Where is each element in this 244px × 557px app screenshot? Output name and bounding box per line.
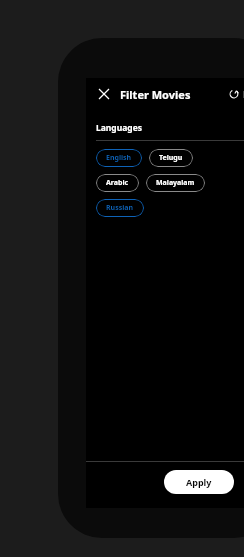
button[interactable]: English	[96, 149, 142, 167]
staticText: Apply	[186, 476, 212, 488]
staticText: English	[106, 153, 132, 163]
other: Reset	[228, 88, 240, 100]
staticText: Languages	[96, 122, 143, 134]
button[interactable]: Reset	[228, 84, 244, 104]
button[interactable]: Telugu	[149, 149, 193, 167]
button[interactable]: Arabic	[96, 174, 139, 192]
button[interactable]: Malayalam	[146, 174, 205, 192]
staticText: Russian	[106, 203, 134, 213]
button[interactable]: Russian	[96, 199, 144, 217]
button[interactable]: Apply	[164, 470, 234, 494]
staticText: Reset	[243, 89, 244, 100]
staticText: Malayalam	[156, 178, 195, 188]
staticText: Filter Movies	[120, 87, 191, 102]
button[interactable]: Close	[96, 86, 112, 102]
staticText: Arabic	[106, 178, 129, 188]
staticText: Telugu	[159, 153, 183, 163]
